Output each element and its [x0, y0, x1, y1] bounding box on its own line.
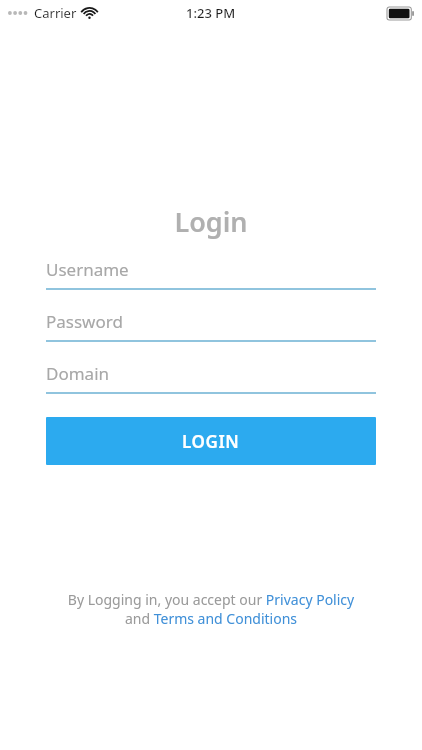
- button[interactable]: Username: [46, 258, 376, 290]
- staticText: 1:23 PM: [186, 4, 236, 22]
- staticText: Login: [0, 203, 422, 240]
- button[interactable]: Password: [46, 310, 376, 342]
- button[interactable]: By Logging in, you accept our Privacy Po…: [56, 590, 366, 628]
- staticText: LOGIN: [182, 430, 240, 453]
- staticText: Username: [46, 258, 129, 281]
- button[interactable]: Domain: [46, 362, 376, 394]
- staticText: Carrier: [34, 4, 77, 22]
- staticText: Password: [46, 310, 123, 333]
- staticText: Domain: [46, 362, 110, 385]
- button[interactable]: LOGIN: [46, 417, 376, 465]
